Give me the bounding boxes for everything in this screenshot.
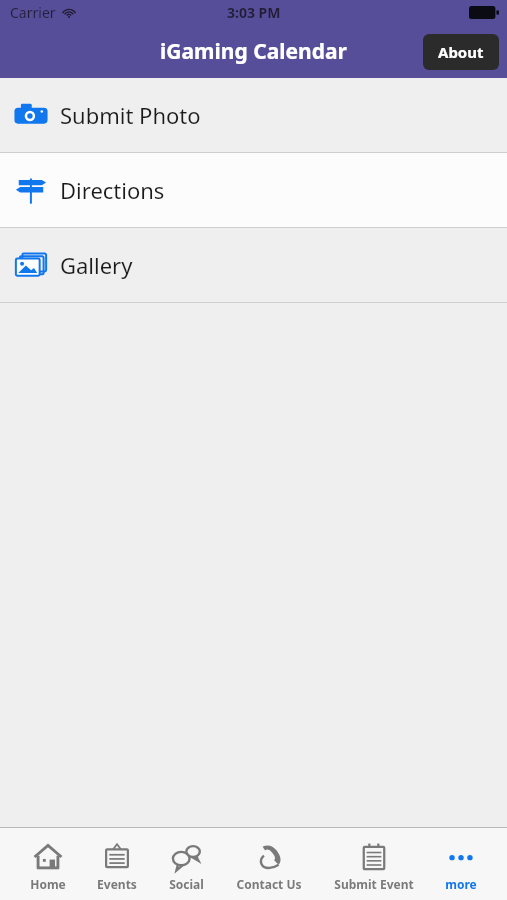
staticText: Directions xyxy=(60,175,165,205)
staticText: Contact Us xyxy=(236,876,302,892)
button[interactable]: Social xyxy=(167,841,206,892)
staticText: Submit Event xyxy=(334,876,414,892)
staticText: Carrier xyxy=(10,3,56,22)
button[interactable]: Events xyxy=(95,841,139,892)
button[interactable]: Home xyxy=(28,841,68,892)
button[interactable]: more xyxy=(443,841,479,892)
staticText: Home xyxy=(30,876,66,892)
button[interactable]: Contact Us xyxy=(234,841,304,892)
staticText: Gallery xyxy=(60,250,133,280)
staticText: Submit Photo xyxy=(60,100,201,130)
button[interactable]: About xyxy=(423,34,499,70)
staticText: About xyxy=(438,42,484,62)
button[interactable]: Submit Event xyxy=(332,841,416,892)
button[interactable]: Directions xyxy=(0,153,507,227)
staticText: Social xyxy=(169,876,204,892)
staticText: 3:03 PM xyxy=(227,3,281,22)
staticText: iGaming Calendar xyxy=(160,37,347,66)
button[interactable]: Submit Photo xyxy=(0,78,507,152)
staticText: more xyxy=(445,876,477,892)
button[interactable]: Gallery xyxy=(0,228,507,302)
staticText: Events xyxy=(97,876,137,892)
